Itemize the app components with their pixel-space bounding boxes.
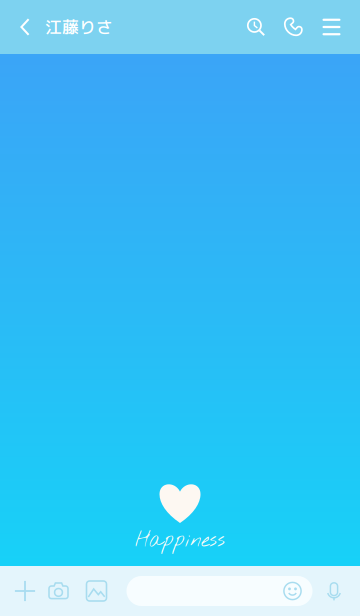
button[interactable]: Photos — [79, 566, 113, 616]
button[interactable]: Menu — [314, 0, 348, 54]
button[interactable]: Voice message — [317, 566, 351, 616]
button[interactable]: Call — [276, 0, 310, 54]
button[interactable]: Search — [239, 0, 273, 54]
staticText: Happiness — [135, 528, 225, 554]
button[interactable]: Add — [8, 566, 42, 616]
button[interactable]: Back — [9, 0, 41, 54]
button[interactable]: Message — [126, 576, 312, 606]
staticText: 江藤りさ — [45, 15, 113, 39]
button[interactable]: 江藤りさ — [45, 0, 113, 54]
button[interactable]: Camera — [41, 566, 75, 616]
